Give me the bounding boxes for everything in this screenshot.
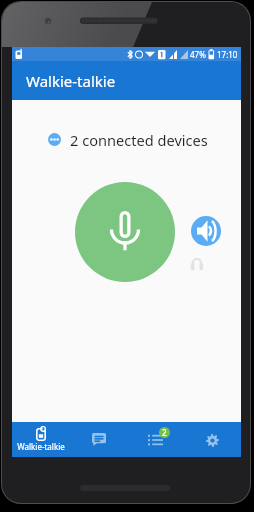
button[interactable]: Talk	[75, 182, 175, 282]
staticText: Walkie-talkie	[17, 441, 65, 452]
button[interactable]: Walkie-talkie	[12, 422, 70, 457]
staticText: 47%	[190, 49, 206, 60]
button[interactable]: Settings	[184, 422, 241, 457]
other: Connected devices	[48, 133, 61, 146]
staticText: 2	[162, 427, 167, 438]
staticText: 2 connected devices	[70, 130, 208, 150]
staticText: 17:10	[217, 49, 238, 60]
button[interactable]: Messages	[70, 422, 127, 457]
staticText: Walkie-talkie	[26, 71, 116, 91]
button[interactable]: Headphones	[190, 257, 204, 271]
button[interactable]: Channels	[127, 422, 184, 457]
button[interactable]: Speaker	[191, 216, 221, 246]
